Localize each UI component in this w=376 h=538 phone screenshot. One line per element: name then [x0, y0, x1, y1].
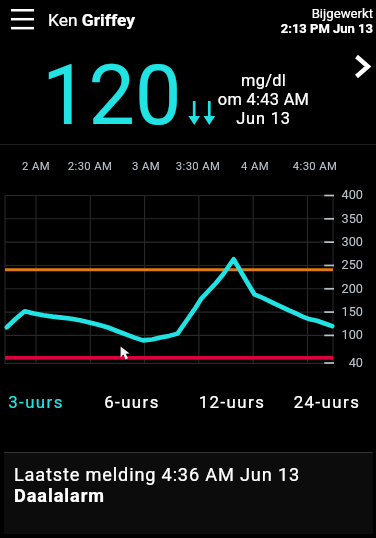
staticText: 3-uurs: [0, 392, 86, 412]
button[interactable]: Laatste melding 4:36 AM Jun 13: [4, 452, 373, 534]
staticText: Daalalarm: [14, 485, 105, 506]
staticText: om 4:43 AM: [212, 90, 315, 109]
staticText: Jun 13: [212, 109, 315, 128]
button[interactable]: [94, 380, 188, 422]
staticText: Bijgewerkt: [221, 6, 373, 21]
staticText: 12-uurs: [182, 392, 282, 412]
staticText: 350: [323, 211, 363, 226]
staticText: 2:30 AM: [60, 160, 120, 173]
staticText: 3 AM: [116, 160, 176, 173]
staticText: 150: [323, 304, 363, 319]
staticText: 250: [323, 257, 363, 272]
staticText: 6-uurs: [82, 392, 182, 412]
button[interactable]: [0, 380, 94, 422]
staticText: 2 AM: [6, 160, 66, 173]
button[interactable]: Next: [348, 52, 376, 80]
staticText: 2:13 PM Jun 13: [221, 21, 373, 36]
staticText: 300: [323, 234, 363, 249]
button[interactable]: [188, 380, 282, 422]
staticText: 100: [323, 327, 363, 342]
staticText: 3:30 AM: [168, 160, 228, 173]
staticText: Laatste melding 4:36 AM Jun 13: [14, 464, 300, 485]
staticText: 200: [323, 281, 363, 296]
button[interactable]: [282, 380, 376, 422]
staticText: 400: [323, 187, 363, 202]
staticText: mg/dl: [212, 71, 315, 90]
button[interactable]: Menu: [0, 0, 44, 38]
staticText: 4 AM: [225, 160, 285, 173]
staticText: Ken Griffey: [48, 10, 135, 30]
staticText: 40: [323, 355, 363, 370]
staticText: 4:30 AM: [285, 160, 345, 173]
staticText: 120: [42, 47, 182, 144]
staticText: 24-uurs: [277, 392, 376, 412]
